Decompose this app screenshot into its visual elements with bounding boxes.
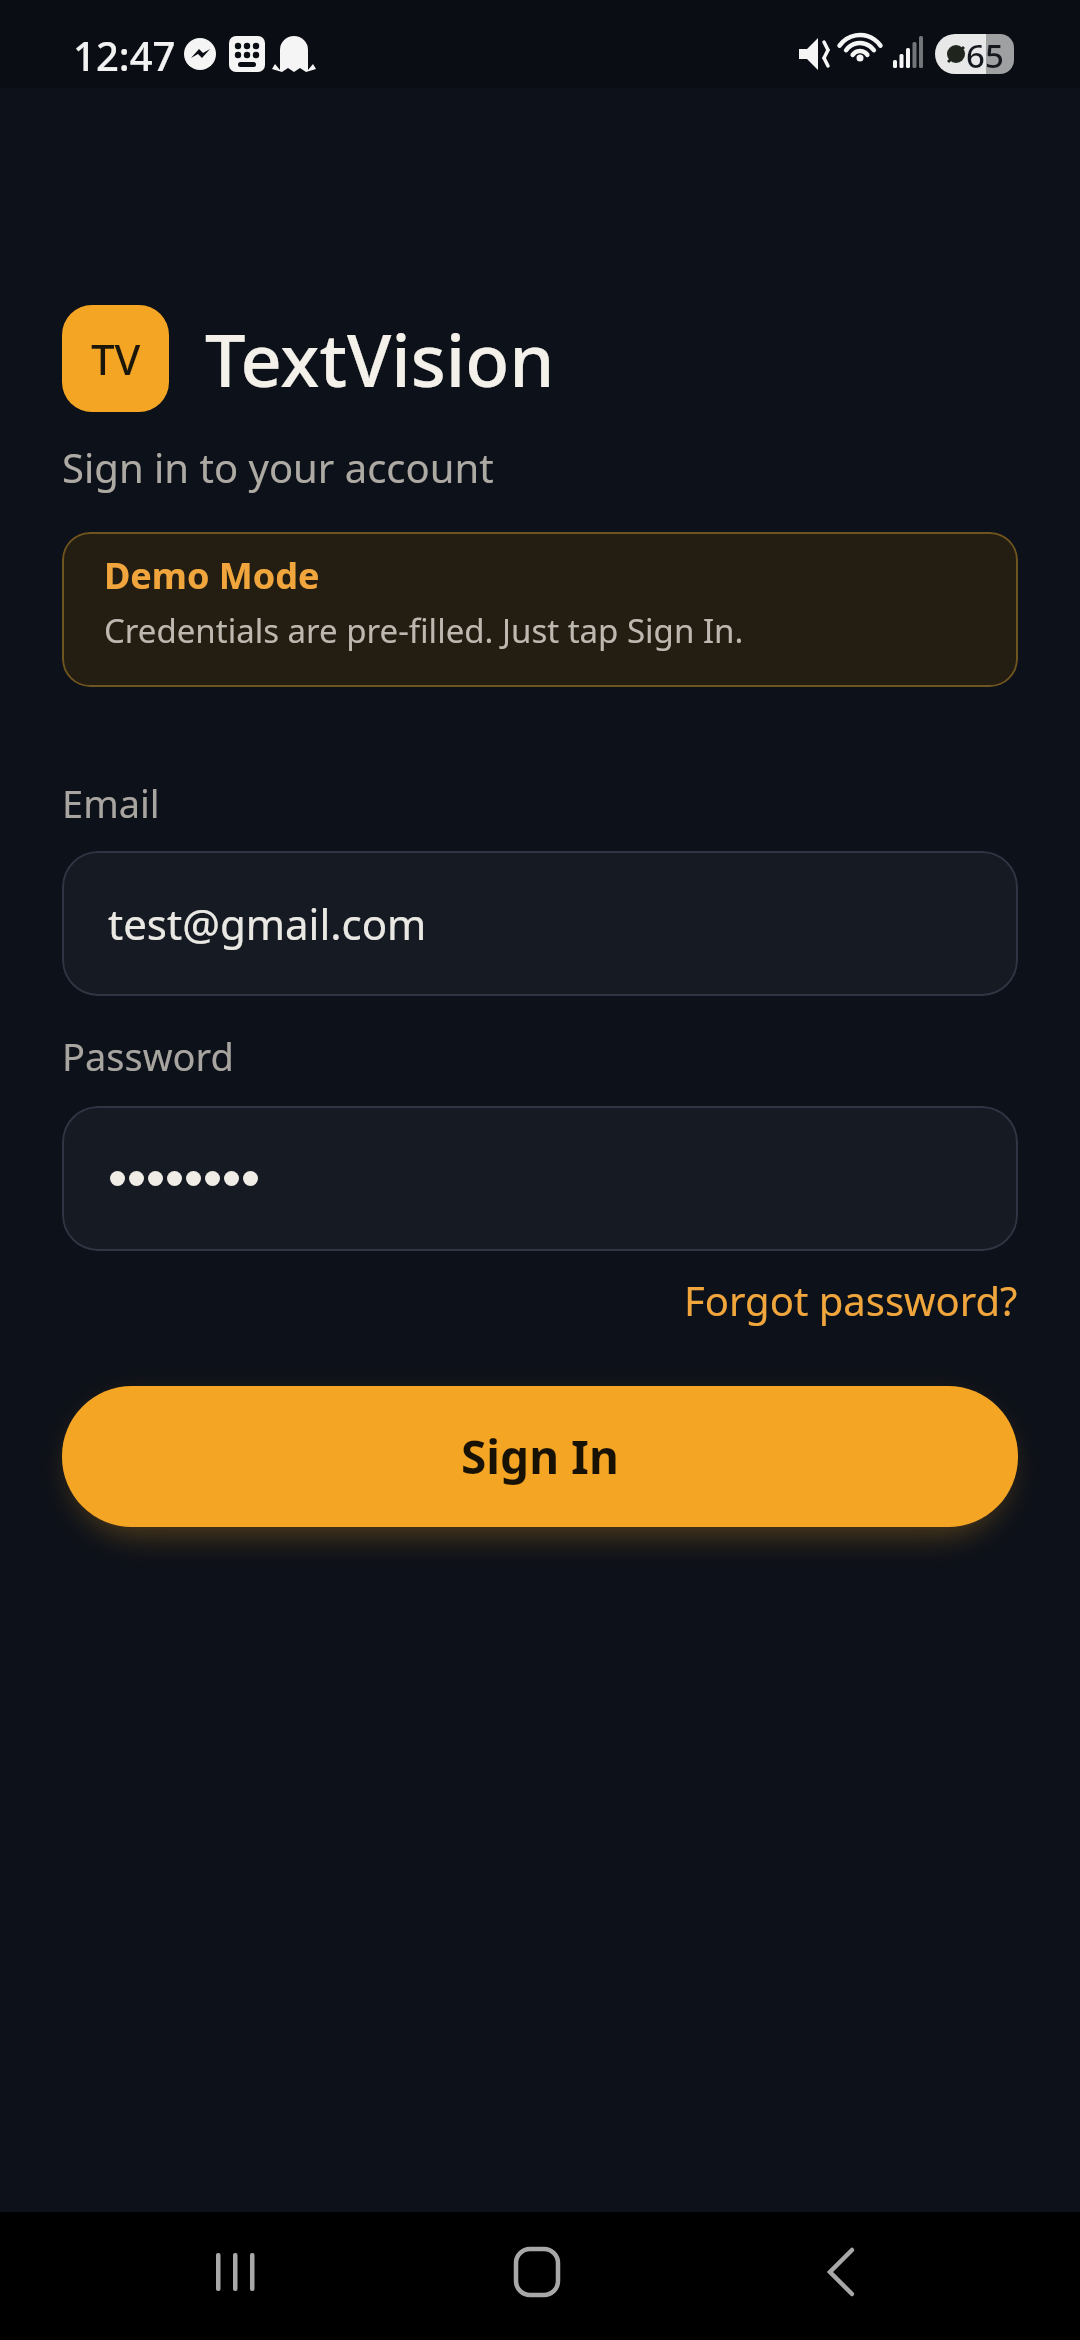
staticText: Password xyxy=(62,1030,234,1082)
button[interactable] xyxy=(360,2212,720,2340)
button[interactable]: Sign In xyxy=(62,1386,1018,1527)
staticText: 65 xyxy=(966,33,1004,78)
staticText: Credentials are pre-filled. Just tap Sig… xyxy=(104,608,744,653)
staticText: Forgot password? xyxy=(684,1273,1018,1327)
button[interactable] xyxy=(62,1106,1018,1251)
button[interactable] xyxy=(720,2212,1080,2340)
staticText: Sign In xyxy=(461,1425,619,1488)
staticText: TV xyxy=(91,330,141,387)
staticText: test@gmail.com xyxy=(108,895,427,952)
button[interactable] xyxy=(0,2212,360,2340)
staticText: Sign in to your account xyxy=(62,440,494,494)
button[interactable]: test@gmail.com xyxy=(62,851,1018,996)
button[interactable]: Forgot password? xyxy=(684,1273,1018,1327)
staticText: TextVision xyxy=(205,310,555,408)
staticText: Demo Mode xyxy=(104,551,320,600)
staticText: Email xyxy=(62,777,160,829)
staticText: 12:47 xyxy=(73,28,176,82)
